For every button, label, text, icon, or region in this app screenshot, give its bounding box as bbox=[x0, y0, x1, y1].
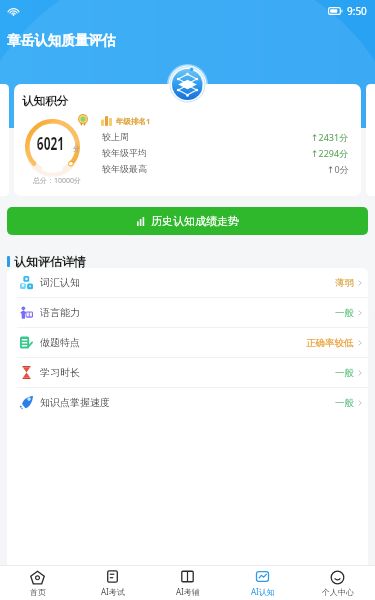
staticText: ↑2431分 bbox=[311, 131, 349, 143]
button[interactable]: 知识点掌握速度 bbox=[7, 388, 368, 417]
button[interactable]: AI考辅 bbox=[150, 566, 225, 600]
button[interactable]: 历史认知成绩走势 bbox=[7, 207, 368, 235]
staticText: 知识点掌握速度 bbox=[40, 396, 110, 409]
staticText: 词汇认知 bbox=[40, 276, 80, 289]
staticText: 历史认知成绩走势 bbox=[151, 214, 239, 228]
staticText: 首页 bbox=[30, 587, 46, 597]
staticText: 总分：10000分 bbox=[33, 176, 82, 186]
staticText: 较年级最高 bbox=[102, 163, 147, 174]
button[interactable]: 学习时长 bbox=[7, 358, 368, 387]
staticText: 薄弱 bbox=[335, 277, 354, 289]
button[interactable]: 词汇认知 bbox=[7, 268, 368, 297]
button[interactable]: 语言能力 bbox=[7, 298, 368, 327]
button[interactable]: 认知评估徽章 bbox=[167, 64, 208, 105]
staticText: 学习时长 bbox=[40, 366, 80, 379]
button[interactable]: 首页 bbox=[0, 566, 75, 600]
staticText: 一般 bbox=[335, 397, 354, 409]
staticText: 9:50 bbox=[347, 4, 367, 18]
button[interactable]: AI考试 bbox=[75, 566, 150, 600]
staticText: 章岳认知质量评估 bbox=[7, 32, 116, 49]
staticText: 较年级平均 bbox=[102, 147, 147, 158]
staticText: 个人中心 bbox=[322, 587, 354, 597]
staticText: 一般 bbox=[335, 367, 354, 379]
staticText: AI考辅 bbox=[176, 586, 200, 597]
staticText: ↑2294分 bbox=[311, 147, 349, 159]
staticText: 正确率较低 bbox=[306, 337, 354, 349]
staticText: 分 bbox=[73, 144, 80, 153]
staticText: 6021 bbox=[37, 131, 64, 156]
staticText: AI考试 bbox=[101, 586, 125, 597]
staticText: ↑0分 bbox=[327, 163, 349, 175]
staticText: 认知积分 bbox=[22, 94, 68, 108]
staticText: 一般 bbox=[335, 307, 354, 319]
button[interactable]: 认知积分 bbox=[14, 84, 361, 196]
staticText: 较上周 bbox=[102, 131, 129, 142]
staticText: 认知评估详情 bbox=[14, 254, 86, 269]
staticText: 年级排名1 bbox=[116, 116, 151, 126]
staticText: 语言能力 bbox=[40, 306, 80, 319]
button[interactable]: AI认知 bbox=[225, 566, 300, 600]
staticText: AI认知 bbox=[251, 586, 275, 597]
button[interactable]: 做题特点 bbox=[7, 328, 368, 357]
button[interactable]: 个人中心 bbox=[300, 566, 375, 600]
staticText: 做题特点 bbox=[40, 336, 80, 349]
